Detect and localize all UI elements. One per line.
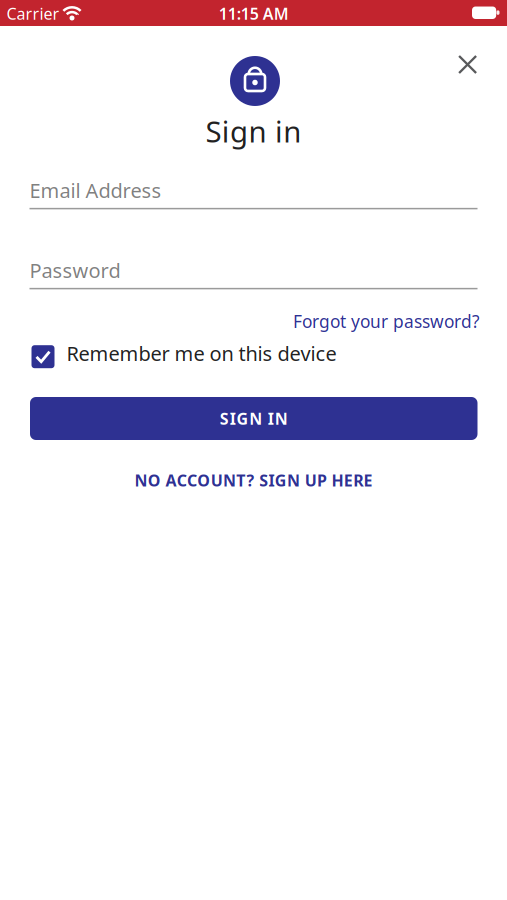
staticText: 11:15 AM	[219, 3, 289, 24]
button[interactable]: Forgot your password?	[293, 310, 480, 333]
staticText: Password	[29, 257, 120, 284]
button[interactable]: NO ACCOUNT? SIGN UP HERE	[135, 470, 372, 491]
button[interactable]	[459, 56, 476, 73]
button[interactable]: Password	[29, 257, 477, 288]
staticText: Sign in	[205, 111, 301, 150]
staticText: Remember me on this device	[66, 340, 336, 367]
staticText: Email Address	[29, 177, 161, 204]
button[interactable]: SIGN IN	[30, 397, 477, 440]
button[interactable]: Remember me on this device	[29, 343, 477, 370]
staticText: Carrier	[6, 3, 59, 24]
staticText: Forgot your password?	[293, 310, 480, 333]
staticText: SIGN IN	[220, 408, 288, 429]
button[interactable]: Email Address	[29, 177, 477, 208]
staticText: NO ACCOUNT? SIGN UP HERE	[135, 470, 372, 491]
